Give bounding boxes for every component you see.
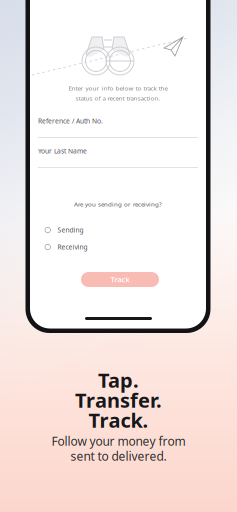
staticText: Your Last Name [38,146,87,156]
staticText: Sending [57,225,83,235]
button[interactable]: Reference / Auth No. [38,113,198,139]
staticText: Track. [88,406,148,434]
staticText: Enter your info below to track the [68,84,167,92]
staticText: Track [110,274,129,284]
staticText: Are you sending or receiving? [74,200,162,208]
staticText: Follow your money from [51,433,185,449]
button[interactable]: Your Last Name [38,143,198,169]
staticText: Receiving [57,242,87,252]
staticText: Reference / Auth No. [38,116,103,126]
button[interactable]: Receiving [45,242,135,252]
button[interactable]: Track [81,272,159,287]
staticText: sent to delivered. [70,448,166,464]
button[interactable]: Sending [45,225,135,235]
staticText: Transfer. [75,386,162,414]
staticText: status of a recent transaction. [75,94,160,102]
staticText: Tap. [98,366,139,394]
